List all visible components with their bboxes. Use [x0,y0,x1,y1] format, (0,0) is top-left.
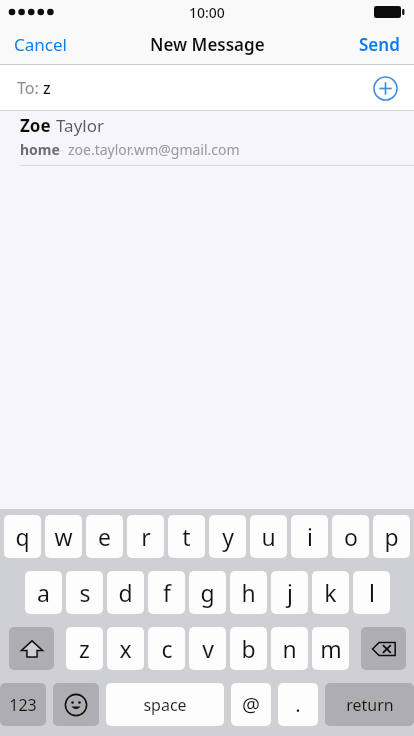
button[interactable]: . [278,683,318,726]
button[interactable]: Backspace [361,627,406,670]
button[interactable]: a [25,571,62,614]
staticText: zoe.taylor.wm@gmail.com [68,140,240,159]
button[interactable]: 123 [0,683,46,726]
staticText: home [20,140,68,159]
button[interactable]: d [107,571,144,614]
button[interactable]: space [106,683,224,726]
staticText: p [384,521,399,552]
staticText: n [282,633,297,664]
staticText: . [295,691,301,718]
button[interactable]: z [66,627,103,670]
staticText: Taylor [56,114,104,137]
staticText: New Message [150,33,265,56]
button[interactable]: Zoe [0,111,414,166]
staticText: j [287,577,293,608]
staticText: c [161,633,173,664]
button[interactable]: l [353,571,390,614]
button[interactable]: b [230,627,267,670]
button[interactable]: x [107,627,144,670]
staticText: q [15,521,30,552]
staticText: Cancel [14,33,67,56]
staticText: e [98,521,111,552]
button[interactable]: f [148,571,185,614]
button[interactable]: m [312,627,349,670]
button[interactable]: Emoji keyboard [53,683,99,726]
button[interactable]: Add contact [368,71,402,105]
button[interactable]: c [148,627,185,670]
button[interactable]: s [66,571,103,614]
staticText: s [79,577,91,608]
staticText: f [163,577,171,608]
button[interactable]: e [86,515,123,558]
button[interactable]: j [271,571,308,614]
button[interactable]: n [271,627,308,670]
staticText: @ [242,691,260,718]
button[interactable]: To: [0,65,414,110]
staticText: 123 [9,694,37,716]
staticText: d [118,577,133,608]
staticText: 10:00 [189,3,225,22]
staticText: b [241,633,256,664]
button[interactable]: @ [231,683,271,726]
button[interactable]: o [332,515,369,558]
button[interactable]: w [45,515,82,558]
button[interactable]: t [168,515,205,558]
staticText: return [346,694,394,716]
button[interactable]: h [230,571,267,614]
staticText: space [143,694,187,716]
staticText: i [307,521,313,552]
staticText: Zoe [20,114,56,137]
button[interactable]: u [250,515,287,558]
staticText: k [324,577,337,608]
staticText: m [320,633,342,664]
staticText: z [43,77,51,99]
staticText: Send [359,33,400,56]
staticText: u [261,521,276,552]
staticText: r [141,521,151,552]
button[interactable]: g [189,571,226,614]
button[interactable]: i [291,515,328,558]
button[interactable]: r [127,515,164,558]
staticText: z [79,633,90,664]
button[interactable]: Cancel [5,26,76,63]
staticText: w [54,521,73,552]
staticText: a [37,577,50,608]
staticText: v [202,633,214,664]
staticText: t [182,521,191,552]
staticText: o [344,521,358,552]
staticText: h [241,577,256,608]
button[interactable]: p [373,515,410,558]
button[interactable]: return [325,683,414,726]
staticText: g [200,577,215,608]
button[interactable]: q [4,515,41,558]
staticText: l [369,577,375,608]
button[interactable]: y [209,515,246,558]
button[interactable]: Send [350,26,409,63]
button[interactable]: k [312,571,349,614]
staticText: x [119,633,132,664]
staticText: y [222,521,234,552]
staticText: To: [17,77,43,99]
button[interactable]: v [189,627,226,670]
button[interactable]: Shift [9,627,54,670]
